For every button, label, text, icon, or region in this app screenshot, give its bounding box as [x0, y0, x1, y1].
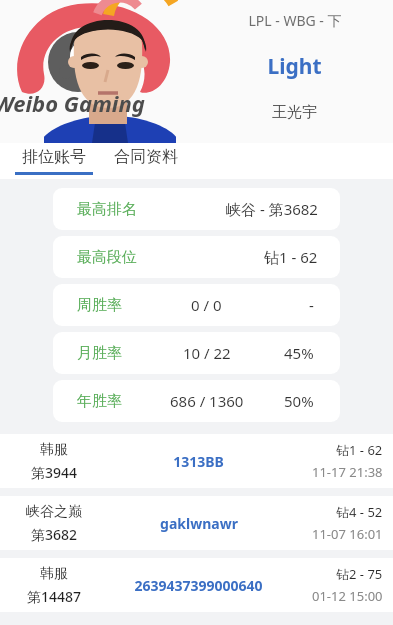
staticText: 45%	[284, 343, 314, 363]
staticText: 10 / 22	[183, 343, 231, 363]
staticText: 周胜率	[77, 296, 122, 315]
staticText: 年胜率	[77, 392, 122, 411]
button[interactable]: 月胜率	[53, 332, 340, 374]
button[interactable]: 峡谷之巅	[0, 496, 393, 550]
staticText: 韩服	[40, 565, 68, 583]
button[interactable]: 韩服	[0, 434, 393, 488]
staticText: 钻2 - 75	[336, 565, 383, 583]
staticText: 合同资料	[114, 147, 178, 167]
button[interactable]: 年胜率	[53, 380, 340, 422]
staticText: gaklwnawr	[160, 514, 238, 533]
staticText: 钻4 - 52	[336, 503, 383, 521]
staticText: 钻1 - 62	[264, 247, 318, 267]
staticText: 01-12 15:00	[312, 587, 383, 605]
staticText: 1313BB	[173, 452, 224, 471]
staticText: 11-07 16:01	[312, 525, 383, 543]
staticText: 峡谷 - 第3682	[226, 199, 318, 219]
button[interactable]: 周胜率	[53, 284, 340, 326]
staticText: LPL - WBG - 下	[248, 11, 342, 30]
staticText: 王光宇	[272, 103, 317, 122]
staticText: 11-17 21:38	[312, 463, 383, 481]
button[interactable]: 排位账号	[13, 147, 95, 175]
staticText: Light	[267, 52, 322, 81]
button[interactable]: 最高排名	[53, 188, 340, 230]
staticText: 最高排名	[77, 200, 137, 219]
staticText: -	[309, 295, 314, 315]
button[interactable]: 合同资料	[112, 149, 180, 173]
staticText: 第3682	[31, 525, 78, 544]
staticText: 韩服	[40, 441, 68, 459]
staticText: 最高段位	[77, 248, 137, 267]
staticText: 第3944	[31, 463, 78, 482]
button[interactable]: 最高段位	[53, 236, 340, 278]
staticText: 0 / 0	[191, 295, 222, 315]
staticText: 2639437399000640	[134, 576, 263, 595]
button[interactable]: 韩服	[0, 558, 393, 612]
staticText: 月胜率	[77, 344, 122, 363]
staticText: 第14487	[27, 587, 82, 606]
staticText: 排位账号	[22, 147, 86, 167]
staticText: 钻1 - 62	[336, 441, 383, 459]
staticText: Weibo Gaming	[0, 88, 145, 118]
staticText: 686 / 1360	[170, 391, 244, 411]
staticText: 峡谷之巅	[26, 503, 82, 521]
staticText: 50%	[284, 391, 314, 411]
